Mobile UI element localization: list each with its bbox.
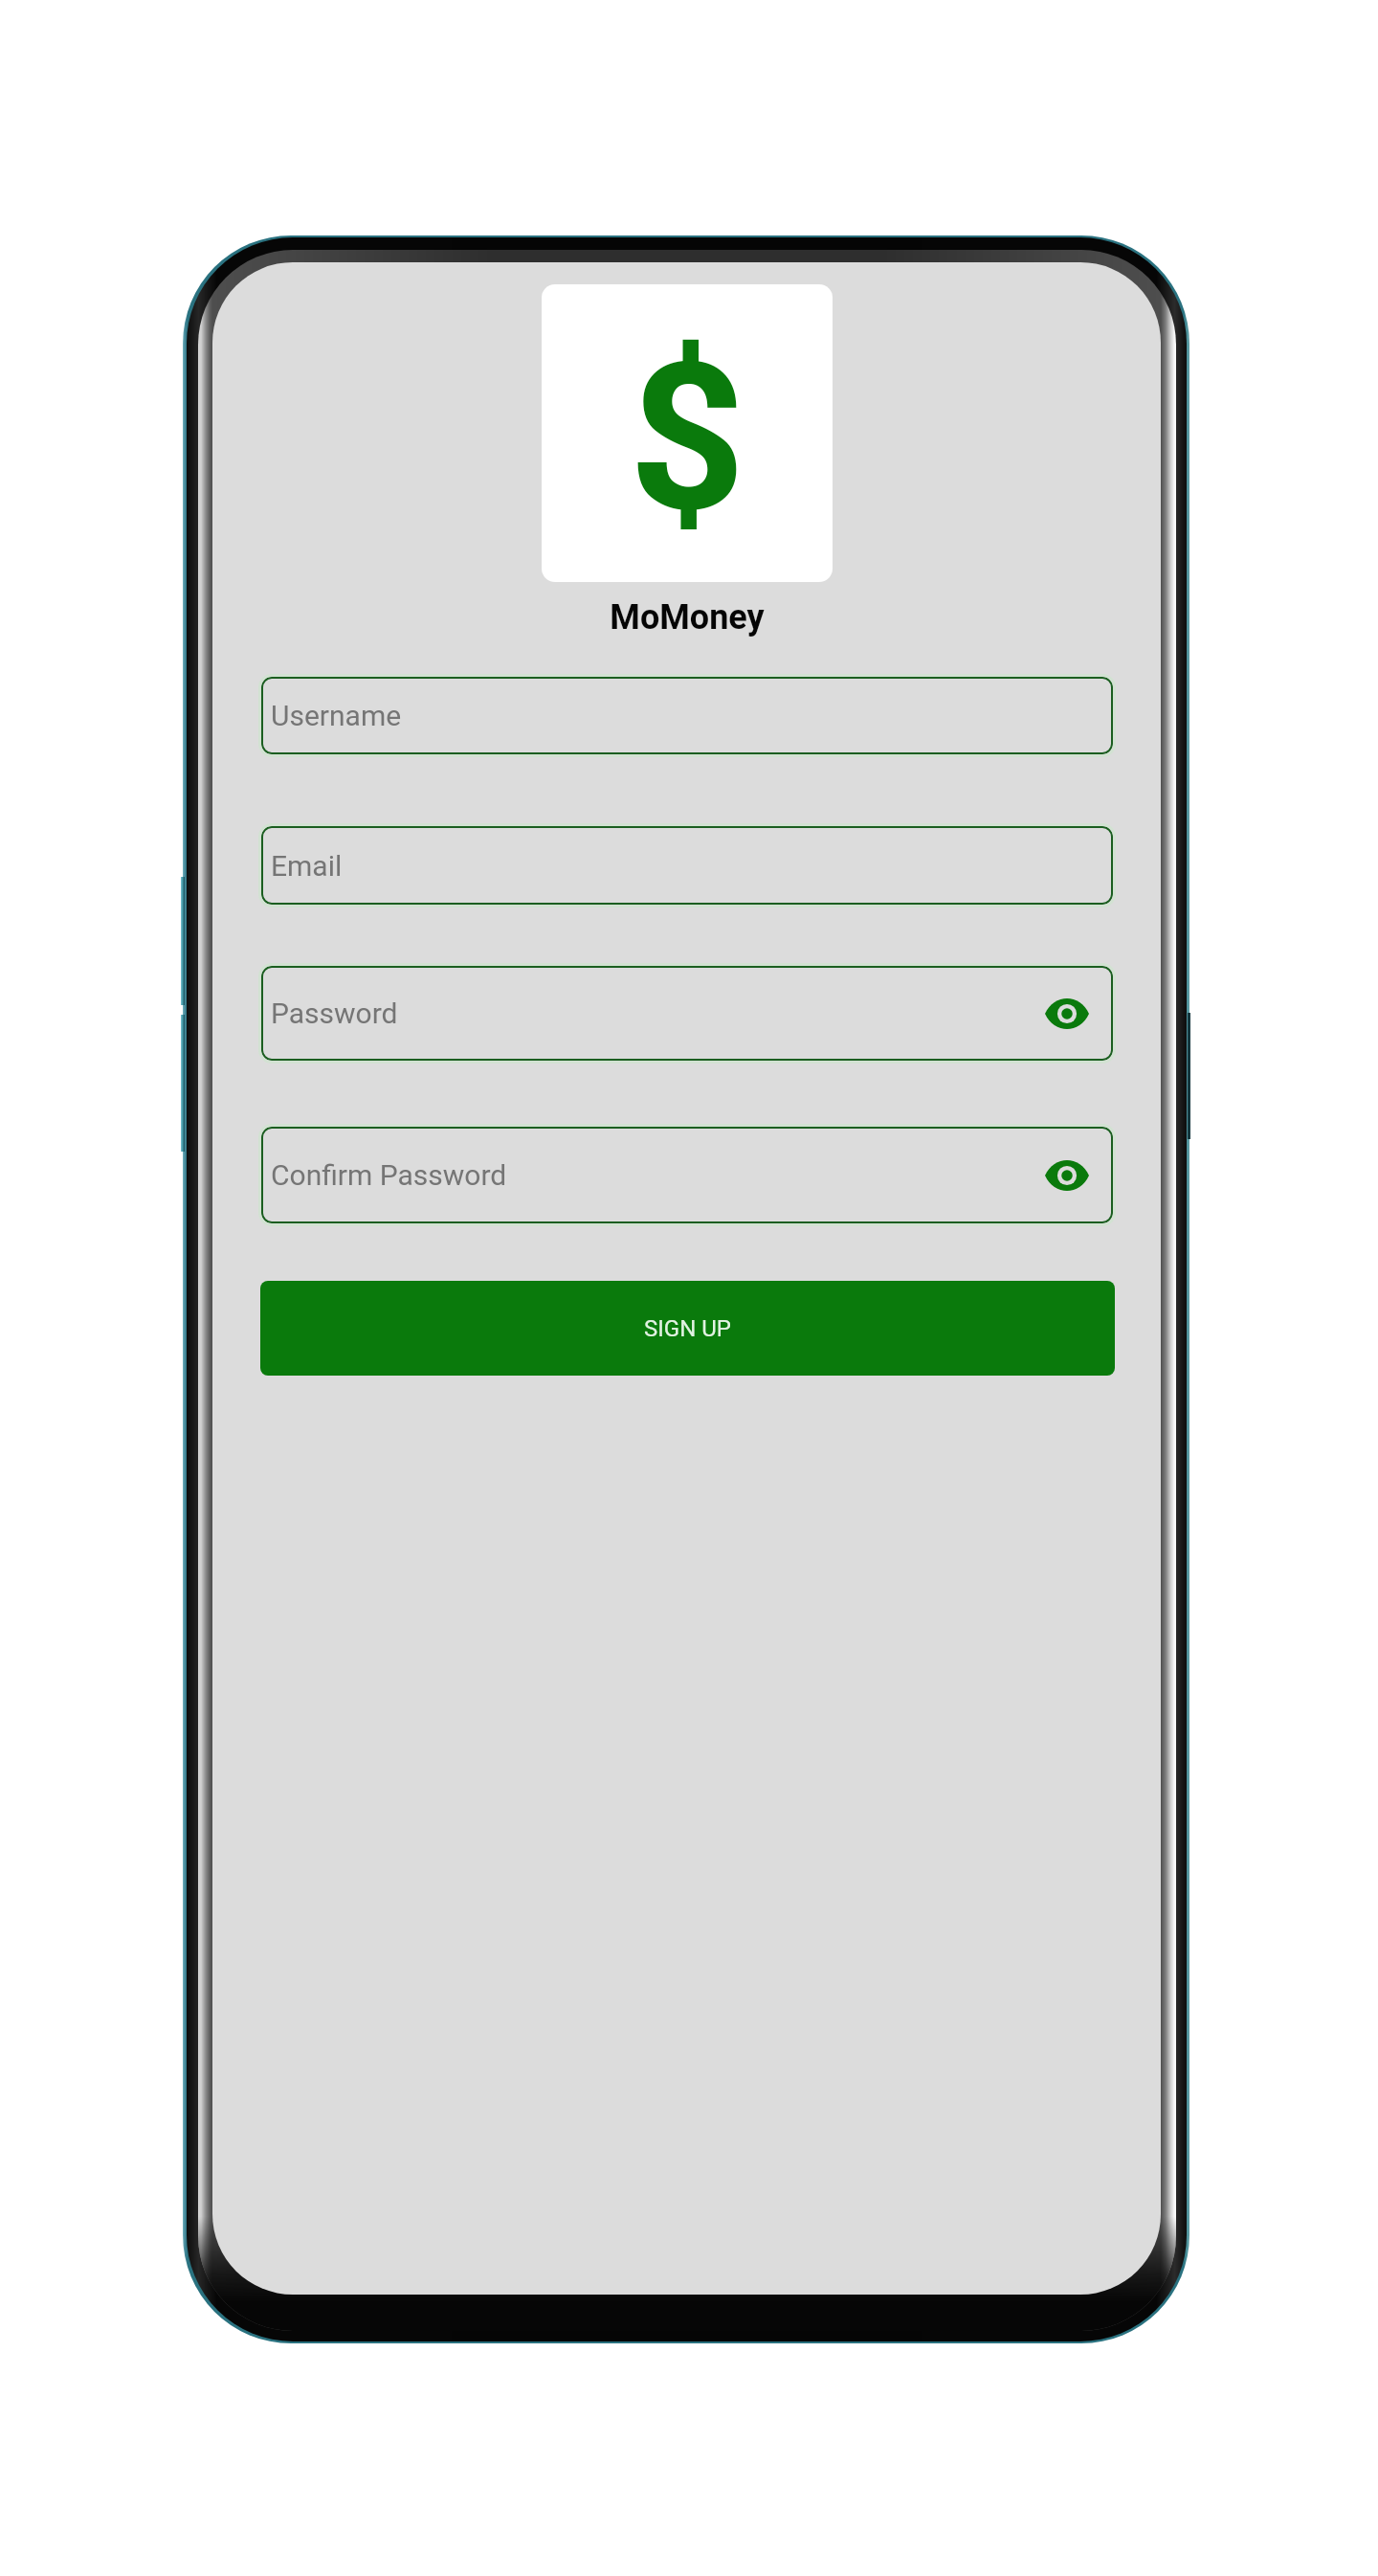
button[interactable]: Username — [261, 677, 1113, 754]
button[interactable]: Password — [261, 966, 1113, 1061]
button[interactable]: Toggle password visibility — [1033, 980, 1100, 1047]
staticText: Email — [271, 849, 343, 883]
staticText: SIGN UP — [644, 1315, 731, 1342]
staticText: $ — [629, 319, 746, 558]
button[interactable]: Toggle password visibility — [1033, 1142, 1100, 1209]
staticText: MoMoney — [610, 597, 765, 638]
button[interactable]: SIGN UP — [260, 1281, 1115, 1376]
button[interactable]: Confirm Password — [261, 1127, 1113, 1223]
staticText: Username — [271, 699, 402, 732]
button[interactable]: Email — [261, 826, 1113, 905]
staticText: Confirm Password — [271, 1158, 507, 1192]
staticText: Password — [271, 997, 398, 1030]
